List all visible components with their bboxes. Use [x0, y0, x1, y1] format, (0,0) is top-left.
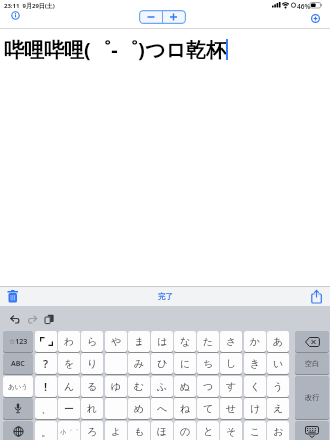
button[interactable]: よ — [105, 421, 127, 440]
staticText: れ — [87, 402, 98, 415]
button[interactable]: 。 — [35, 421, 57, 440]
button[interactable]: て — [197, 398, 219, 419]
button[interactable]: な — [174, 331, 196, 352]
button[interactable]: み — [128, 353, 150, 374]
staticText: ち — [203, 357, 214, 370]
button[interactable]: ち — [197, 353, 219, 374]
button[interactable]: の — [174, 421, 196, 440]
staticText: 46% — [297, 2, 311, 11]
staticText: よ — [111, 425, 122, 438]
button[interactable]: い — [267, 353, 289, 374]
staticText: ? — [43, 356, 49, 371]
staticText: 23:11 9月29日(土) — [4, 2, 55, 10]
button[interactable]: ほ — [151, 421, 173, 440]
button[interactable]: え — [267, 398, 289, 419]
staticText: た — [203, 335, 214, 348]
button[interactable]: ふ — [151, 376, 173, 397]
staticText: け — [250, 402, 261, 415]
button[interactable]: ひ — [151, 353, 173, 374]
staticText: や — [111, 335, 122, 348]
staticText: ん — [64, 380, 75, 393]
button[interactable]: ま — [128, 331, 150, 352]
button[interactable]: き — [244, 353, 266, 374]
button[interactable] — [105, 353, 127, 374]
button[interactable]: あ — [267, 331, 289, 352]
button[interactable]: あいう — [3, 376, 33, 397]
button[interactable]: め — [128, 398, 150, 419]
button[interactable] — [11, 11, 20, 20]
button[interactable]: を — [58, 353, 80, 374]
staticText: と — [203, 425, 214, 438]
button[interactable]: や — [105, 331, 127, 352]
button[interactable]: わ — [58, 331, 80, 352]
button[interactable]: 小゛゜ — [58, 421, 80, 440]
button[interactable]: ? — [35, 353, 57, 374]
button[interactable] — [311, 290, 323, 304]
staticText: さ — [226, 335, 237, 348]
staticText: 空白 — [305, 359, 320, 368]
button[interactable]: る — [81, 376, 103, 397]
button[interactable] — [27, 315, 38, 325]
button[interactable]: も — [128, 421, 150, 440]
staticText: へ — [157, 402, 168, 415]
staticText: く — [250, 380, 261, 393]
button[interactable]: ☆123 — [3, 331, 33, 352]
button[interactable]: し — [220, 353, 242, 374]
button[interactable]: ね — [174, 398, 196, 419]
button[interactable]: こ — [244, 421, 266, 440]
button[interactable]: へ — [151, 398, 173, 419]
button[interactable]: た — [197, 331, 219, 352]
button[interactable]: 完了 — [158, 292, 173, 301]
button[interactable]: ゆ — [105, 376, 127, 397]
button[interactable]: そ — [220, 421, 242, 440]
button[interactable]: ろ — [81, 421, 103, 440]
staticText: す — [226, 380, 237, 393]
button[interactable]: む — [128, 376, 150, 397]
button[interactable]: 改行 — [295, 376, 329, 419]
button[interactable] — [3, 421, 33, 440]
button[interactable] — [7, 290, 19, 303]
button[interactable] — [295, 421, 329, 440]
button[interactable]: ら — [81, 331, 103, 352]
button[interactable]: は — [151, 331, 173, 352]
button[interactable]: つ — [197, 376, 219, 397]
button[interactable] — [10, 315, 21, 325]
button[interactable]: ABC — [3, 353, 33, 374]
button[interactable]: せ — [220, 398, 242, 419]
button[interactable] — [162, 10, 186, 24]
staticText: せ — [226, 402, 237, 415]
button[interactable]: う — [267, 376, 289, 397]
button[interactable]: さ — [220, 331, 242, 352]
button[interactable] — [44, 314, 55, 325]
staticText: て — [203, 402, 214, 415]
button[interactable]: く — [244, 376, 266, 397]
button[interactable]: け — [244, 398, 266, 419]
staticText: そ — [226, 425, 237, 438]
button[interactable]: に — [174, 353, 196, 374]
button[interactable]: り — [81, 353, 103, 374]
staticText: ぬ — [180, 380, 191, 393]
button[interactable] — [35, 331, 57, 352]
button[interactable]: お — [267, 421, 289, 440]
button[interactable]: ぬ — [174, 376, 196, 397]
button[interactable] — [295, 331, 329, 352]
button[interactable]: ん — [58, 376, 80, 397]
button[interactable]: ! — [35, 376, 57, 397]
button[interactable] — [105, 398, 127, 419]
button[interactable] — [139, 10, 162, 24]
button[interactable]: か — [244, 331, 266, 352]
staticText: 完了 — [158, 292, 173, 301]
staticText: こ — [250, 425, 261, 438]
staticText: し — [226, 357, 237, 370]
button[interactable]: 空白 — [295, 353, 329, 374]
button[interactable]: と — [197, 421, 219, 440]
button[interactable] — [311, 14, 320, 23]
staticText: 改行 — [305, 393, 320, 402]
button[interactable]: す — [220, 376, 242, 397]
staticText: ー — [64, 402, 74, 415]
button[interactable] — [3, 398, 33, 419]
button[interactable]: ー — [58, 398, 80, 419]
button[interactable]: 、 — [35, 398, 57, 419]
button[interactable]: れ — [81, 398, 103, 419]
staticText: ☆123 — [9, 337, 28, 347]
